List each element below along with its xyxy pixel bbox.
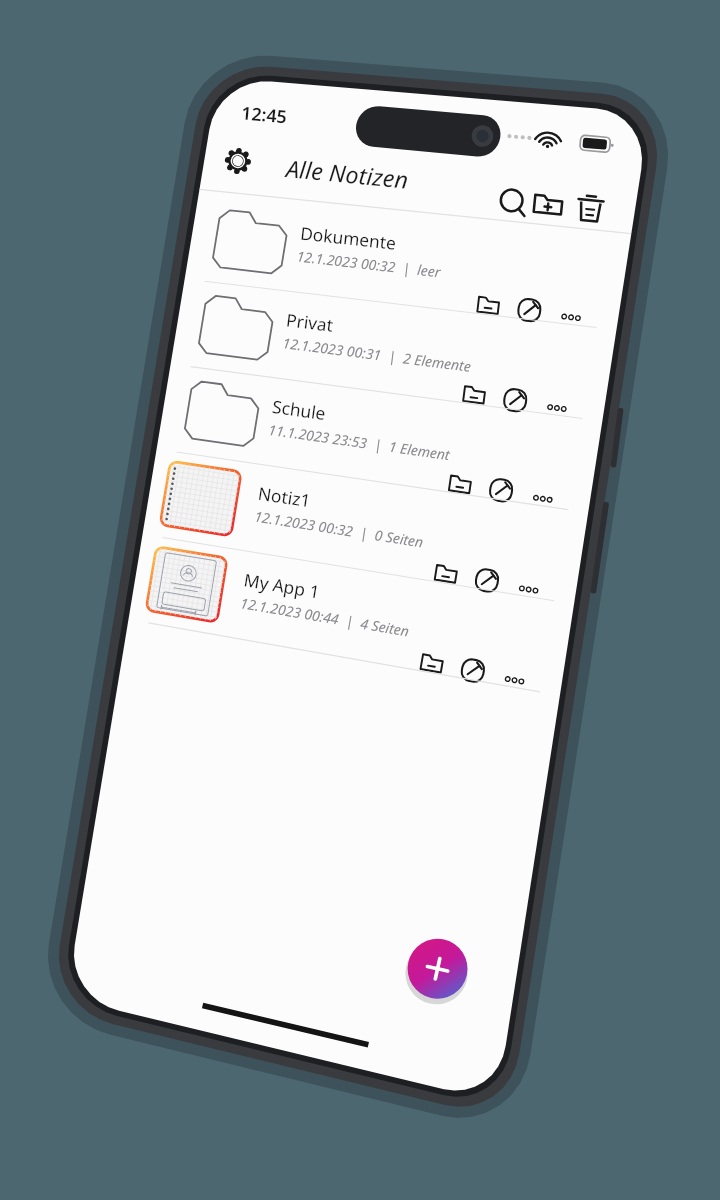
button[interactable]: Notizen Liste (0, 0, 720, 1200)
other: Notizen Liste (0, 0, 720, 1200)
